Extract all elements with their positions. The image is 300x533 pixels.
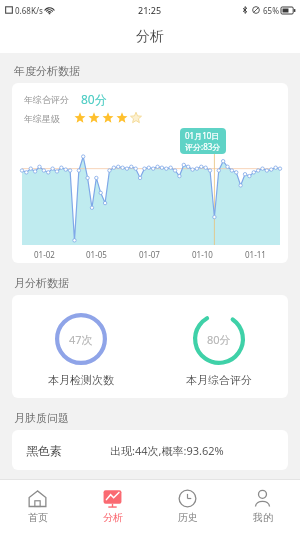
- other: 我的: [253, 489, 272, 508]
- button[interactable]: 历史: [150, 480, 225, 533]
- button[interactable]: 首页: [0, 480, 75, 533]
- staticText: 80分: [81, 91, 107, 107]
- other: 历史: [178, 489, 197, 508]
- staticText: 21:25: [138, 4, 162, 16]
- staticText: 本月检测次数: [48, 373, 114, 387]
- staticText: 01-07: [139, 249, 160, 260]
- button[interactable]: 47次: [12, 306, 150, 387]
- staticText: 年综合评分: [24, 94, 69, 105]
- button[interactable]: 分析: [75, 480, 150, 533]
- staticText: 80分: [207, 332, 231, 347]
- staticText: 月肤质问题: [14, 411, 69, 425]
- staticText: 出现:44次,概率:93.62%: [110, 443, 224, 458]
- staticText: 01-10: [192, 249, 213, 260]
- staticText: 年综星级: [24, 113, 60, 124]
- staticText: 评分:83分: [185, 141, 221, 152]
- staticText: 01月10日: [185, 130, 220, 141]
- staticText: 黑色素: [26, 443, 62, 458]
- other: 首页: [28, 489, 47, 508]
- staticText: 01-02: [34, 249, 55, 260]
- button[interactable]: 年综合评分: [12, 83, 288, 263]
- staticText: 我的: [253, 511, 273, 524]
- staticText: 分析: [103, 511, 123, 524]
- staticText: 年度分析数据: [14, 64, 80, 78]
- button[interactable]: 黑色素: [12, 430, 288, 470]
- staticText: 月分析数据: [14, 276, 69, 290]
- staticText: 历史: [178, 511, 198, 524]
- staticText: 65%: [263, 5, 279, 16]
- staticText: 本月综合评分: [186, 373, 252, 387]
- staticText: 首页: [28, 511, 48, 524]
- button[interactable]: 80分: [150, 306, 288, 387]
- other: 分析: [103, 489, 122, 508]
- button[interactable]: 我的: [225, 480, 300, 533]
- staticText: 01-05: [86, 249, 107, 260]
- staticText: 0.68K/s: [15, 5, 43, 16]
- staticText: 47次: [69, 332, 93, 347]
- staticText: 分析: [136, 28, 164, 46]
- staticText: 01-11: [245, 249, 266, 260]
